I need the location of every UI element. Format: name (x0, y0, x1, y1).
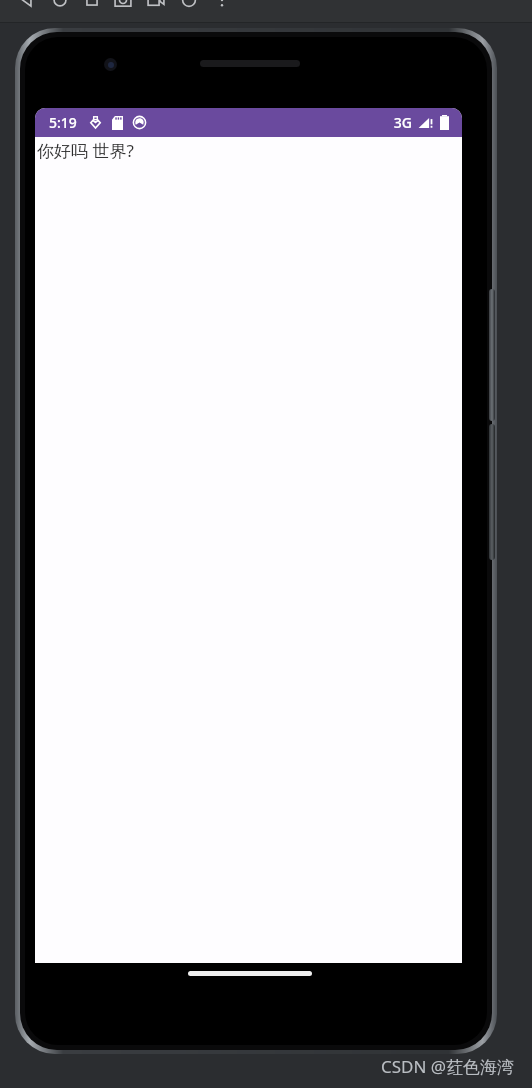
button[interactable]: Overview (81, 0, 103, 11)
button[interactable]: Back (16, 0, 38, 11)
button[interactable]: Home gesture bar (188, 971, 312, 976)
button[interactable]: More options (211, 0, 233, 11)
staticText: 3G (393, 113, 412, 132)
staticText: 你好吗 世界? (37, 139, 134, 162)
button[interactable]: Record screen (145, 0, 167, 11)
button[interactable]: Home (49, 0, 71, 11)
button[interactable]: Screenshot (112, 0, 134, 11)
staticText: 5:19 (49, 113, 77, 132)
staticText: CSDN @荭色海湾 (381, 1055, 515, 1078)
button[interactable]: Rotate (178, 0, 200, 11)
